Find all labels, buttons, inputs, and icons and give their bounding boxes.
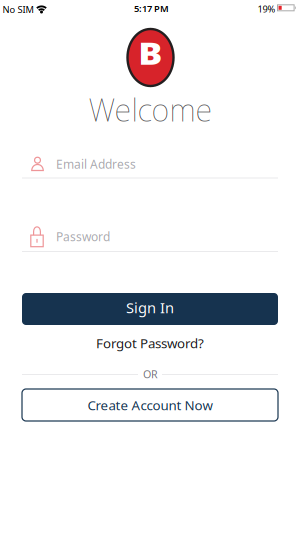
- staticText: Sign In: [126, 298, 174, 317]
- staticText: Welcome: [88, 89, 212, 130]
- staticText: B: [140, 34, 160, 73]
- staticText: Password: [56, 228, 110, 244]
- button[interactable]: Sign In: [22, 293, 278, 325]
- staticText: Forgot Password?: [96, 334, 204, 352]
- button[interactable]: Password: [22, 223, 278, 249]
- button[interactable]: Email Address: [22, 151, 278, 177]
- staticText: Email Address: [56, 156, 136, 172]
- staticText: No SIM: [2, 3, 33, 15]
- staticText: 19%: [257, 3, 275, 15]
- staticText: 5:17 PM: [134, 2, 169, 15]
- staticText: OR: [143, 367, 158, 381]
- staticText: Create Account Now: [87, 396, 212, 414]
- button[interactable]: Forgot Password?: [96, 334, 204, 352]
- button[interactable]: Create Account Now: [22, 389, 278, 421]
